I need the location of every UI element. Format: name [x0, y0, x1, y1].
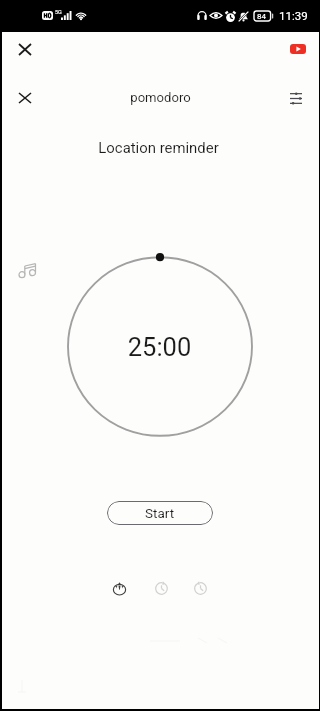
staticText: 25:00	[1, 332, 318, 362]
staticText: Location reminder	[0, 139, 317, 156]
button[interactable]: Close	[8, 81, 42, 115]
button[interactable]: Start	[107, 501, 213, 525]
button[interactable]: YouTube	[281, 32, 315, 66]
staticText: 84	[257, 12, 266, 21]
button[interactable]: Pomodoro	[104, 573, 134, 603]
button[interactable]: Sound	[10, 253, 44, 287]
button[interactable]: Settings	[279, 81, 313, 115]
staticText: 11:39	[279, 9, 308, 22]
staticText: 5G	[55, 9, 62, 15]
staticText: pomodoro	[2, 90, 319, 105]
button[interactable]: Short break	[146, 573, 176, 603]
staticText: Start	[145, 505, 175, 521]
button[interactable]: Close	[8, 32, 42, 66]
button[interactable]: Long break	[185, 573, 215, 603]
